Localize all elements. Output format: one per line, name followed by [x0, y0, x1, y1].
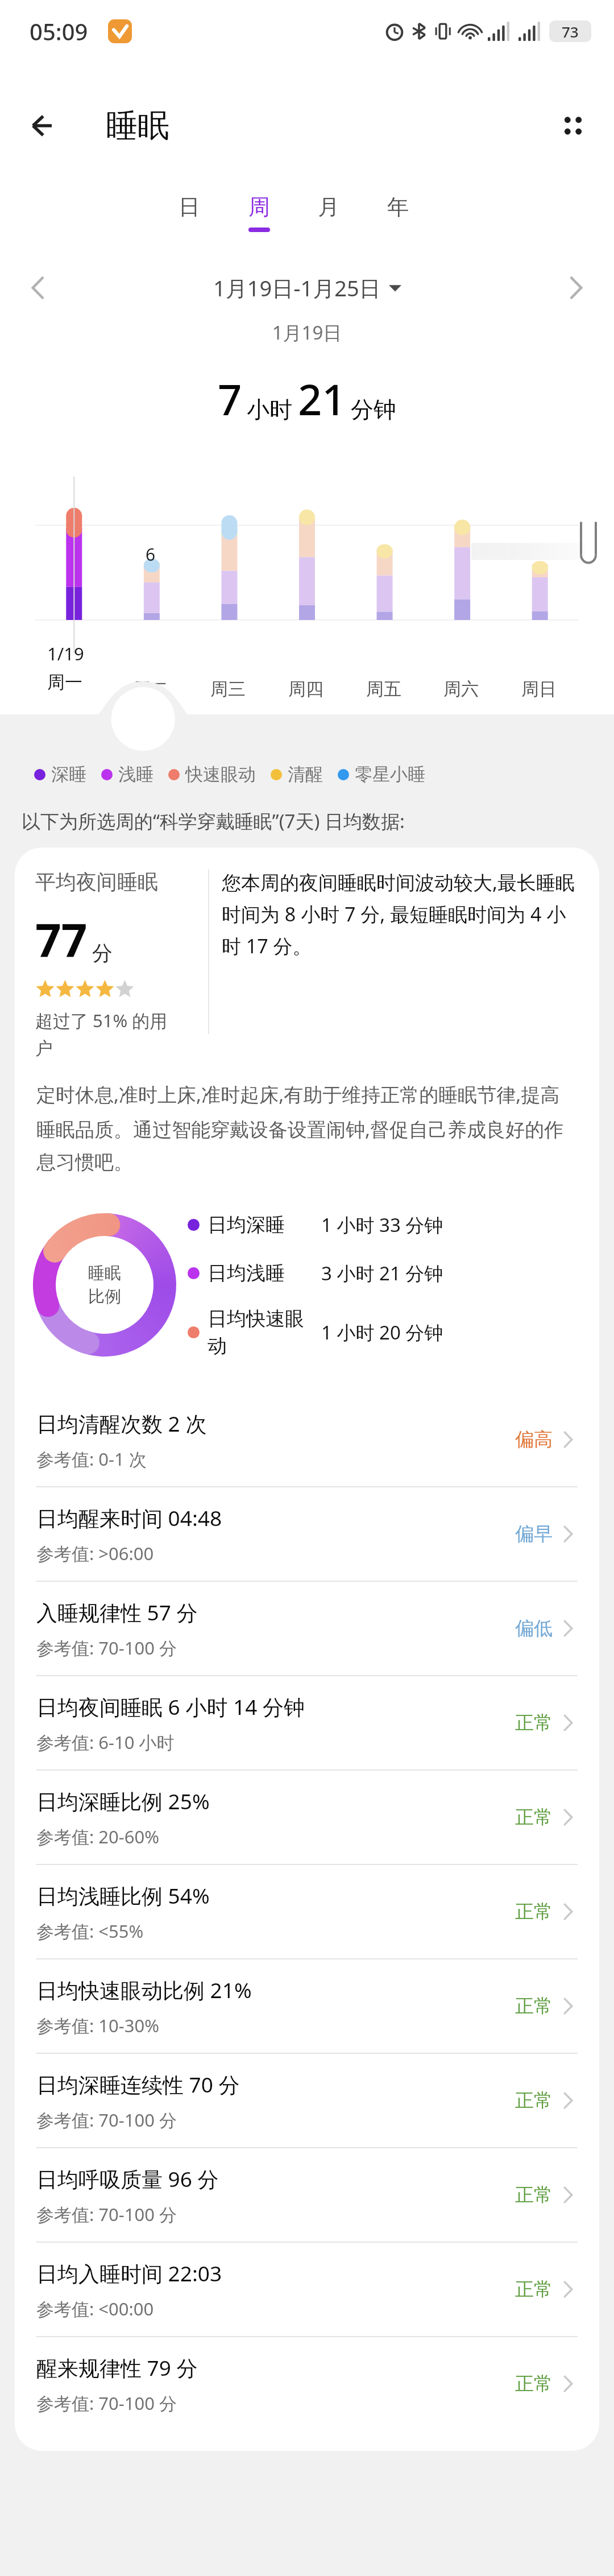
- staticText: 73: [562, 22, 579, 42]
- staticText: 深睡: [51, 763, 86, 785]
- staticText: 参考值: 70-100 分: [36, 2391, 177, 2415]
- staticText: 偏低: [515, 1616, 553, 1640]
- button[interactable]: 1月19日-1月25日: [213, 273, 401, 303]
- staticText: 日: [179, 193, 200, 221]
- staticText: 正常: [515, 2183, 553, 2207]
- button[interactable]: 日均深睡比例 25%: [15, 1771, 599, 1864]
- button[interactable]: 日均深睡连续性 70 分: [15, 2054, 599, 2147]
- staticText: 日均醒来时间 04:48: [36, 1503, 222, 1532]
- staticText: 周四: [288, 678, 323, 700]
- staticText: 比例: [88, 1286, 121, 1307]
- staticText: 正常: [515, 2277, 553, 2301]
- staticText: 日均呼吸质量 96 分: [36, 2164, 219, 2193]
- button[interactable]: 周: [227, 189, 291, 256]
- button[interactable]: 月: [297, 189, 360, 256]
- staticText: 1月19日-1月25日: [213, 273, 381, 303]
- staticText: 参考值: 6-10 小时: [36, 1730, 175, 1754]
- button[interactable]: 日均入睡时间 22:03: [15, 2243, 599, 2336]
- staticText: 7: [218, 370, 242, 428]
- button[interactable]: Back: [16, 97, 73, 154]
- staticText: 正常: [515, 1900, 553, 1924]
- staticText: 参考值: >06:00: [36, 1541, 154, 1565]
- staticText: 日均夜间睡眠 6 小时 14 分钟: [36, 1692, 305, 1721]
- staticText: 浅睡: [118, 763, 153, 785]
- staticText: 小时: [247, 395, 292, 424]
- staticText: 偏早: [515, 1522, 553, 1546]
- staticText: 周三: [210, 678, 246, 700]
- staticText: 入睡规律性 57 分: [36, 1598, 198, 1627]
- button[interactable]: 入睡规律性 57 分: [15, 1582, 599, 1675]
- button[interactable]: 日均浅睡比例 54%: [15, 1865, 599, 1958]
- staticText: 周六: [443, 678, 479, 700]
- staticText: 年: [387, 193, 409, 221]
- staticText: 正常: [515, 1994, 553, 2018]
- staticText: 您本周的夜间睡眠时间波动较大,最长睡眠时间为 8 小时 7 分, 最短睡眠时间为…: [222, 869, 581, 959]
- staticText: 日均浅睡比例 54%: [36, 1881, 210, 1910]
- staticText: 日均深睡比例 25%: [36, 1787, 210, 1816]
- staticText: 醒来规律性 79 分: [36, 2353, 198, 2382]
- staticText: 清醒: [288, 763, 323, 785]
- staticText: 77: [35, 908, 88, 970]
- button[interactable]: 日均呼吸质量 96 分: [15, 2148, 599, 2242]
- staticText: 日均快速眼动比例 21%: [36, 1975, 252, 2004]
- staticText: 日均清醒次数 2 次: [36, 1409, 207, 1438]
- staticText: 05:09: [30, 16, 88, 47]
- staticText: 参考值: 20-60%: [36, 1825, 160, 1849]
- staticText: 周: [248, 193, 270, 221]
- staticText: 定时休息,准时上床,准时起床,有助于维持正常的睡眠节律,提高睡眠品质。通过智能穿…: [36, 1081, 578, 1175]
- staticText: 参考值: 70-100 分: [36, 1636, 177, 1660]
- staticText: 平均夜间睡眠: [35, 869, 158, 895]
- staticText: 参考值: 70-100 分: [36, 2202, 177, 2226]
- staticText: 参考值: <55%: [36, 1919, 144, 1943]
- staticText: 睡眠: [106, 106, 169, 146]
- staticText: 零星小睡: [355, 763, 425, 785]
- staticText: 偏高: [515, 1428, 553, 1452]
- button[interactable]: 日均夜间睡眠 6 小时 14 分钟: [15, 1676, 599, 1769]
- staticText: 周一: [47, 671, 82, 693]
- button[interactable]: 日均醒来时间 04:48: [15, 1487, 599, 1581]
- staticText: 周二: [133, 678, 168, 700]
- button[interactable]: Previous week: [10, 260, 66, 316]
- button[interactable]: 日均快速眼动比例 21%: [15, 1959, 599, 2053]
- staticText: 正常: [515, 1805, 553, 1829]
- staticText: 周五: [366, 678, 401, 700]
- staticText: 参考值: 70-100 分: [36, 2108, 177, 2132]
- staticText: 3 小时 21 分钟: [321, 1260, 443, 1286]
- staticText: 正常: [515, 2372, 553, 2396]
- staticText: 日均深睡连续性 70 分: [36, 2070, 240, 2099]
- staticText: 1/19: [47, 642, 84, 665]
- staticText: 1 小时 33 分钟: [321, 1212, 443, 1238]
- staticText: 快速眼动: [185, 763, 256, 785]
- staticText: 以下为所选周的“科学穿戴睡眠”(7天) 日均数据:: [22, 808, 405, 834]
- staticText: 正常: [515, 1711, 553, 1735]
- staticText: 月: [318, 193, 339, 221]
- staticText: 日均浅睡: [208, 1261, 316, 1285]
- button[interactable]: Next week: [548, 260, 604, 316]
- staticText: 参考值: <00:00: [36, 2297, 154, 2321]
- button[interactable]: 年: [366, 189, 430, 256]
- staticText: 1月19日: [0, 320, 614, 345]
- staticText: 1 小时 20 分钟: [321, 1320, 443, 1345]
- staticText: 日均快速眼 动: [208, 1306, 316, 1358]
- button[interactable]: 醒来规律性 79 分: [15, 2337, 599, 2430]
- staticText: 参考值: 10-30%: [36, 2013, 160, 2037]
- staticText: 日均深睡: [208, 1213, 316, 1237]
- button[interactable]: 日均清醒次数 2 次: [15, 1393, 599, 1486]
- staticText: 正常: [515, 2089, 553, 2112]
- staticText: 日均入睡时间 22:03: [36, 2259, 222, 2288]
- staticText: 21: [298, 370, 346, 428]
- staticText: 分: [92, 940, 113, 966]
- button[interactable]: More options: [544, 96, 603, 155]
- button[interactable]: 日: [157, 189, 221, 256]
- staticText: 周日: [521, 678, 557, 700]
- staticText: 超过了 51% 的用户: [35, 1008, 183, 1060]
- staticText: 分钟: [351, 395, 396, 424]
- staticText: 6: [146, 543, 156, 566]
- staticText: 睡眠: [88, 1263, 121, 1284]
- staticText: 参考值: 0-1 次: [36, 1447, 147, 1471]
